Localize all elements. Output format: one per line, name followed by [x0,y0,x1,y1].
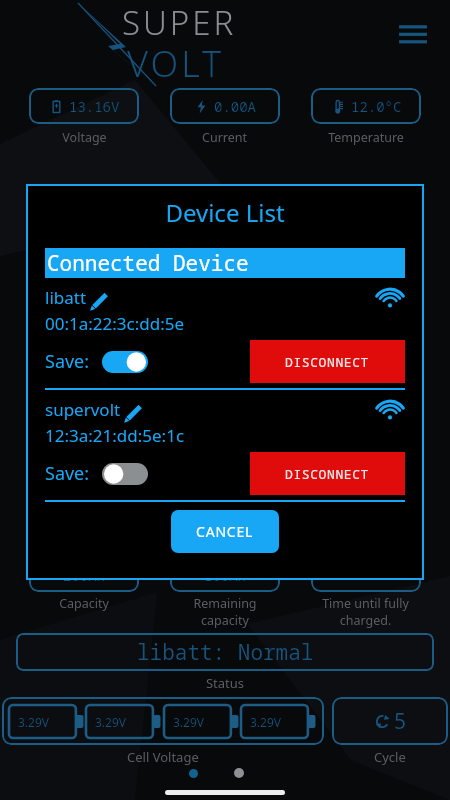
staticText: SUPER [122,0,237,45]
button[interactable]: 200Ah [29,558,139,592]
staticText: Cycle [374,748,406,766]
button[interactable]: libatt: Normal [16,633,434,671]
other: Rename [121,402,143,424]
button[interactable]: DISCONNECT [250,340,405,383]
staticText: Current [202,129,247,146]
staticText: CANCEL [196,522,254,541]
staticText: VOLT [127,39,225,82]
staticText: 3.29V [173,714,205,730]
staticText: Time until fully charged. [295,595,436,629]
staticText: Connected Device [47,249,249,278]
staticText: DISCONNECT [285,465,370,483]
button[interactable]: Save: [45,461,148,486]
staticText: 100Ah [204,566,246,585]
button[interactable]: 3.29V [2,697,324,745]
button[interactable]: Save: [45,349,148,374]
staticText: 3.29V [250,714,282,730]
button[interactable] [311,558,421,592]
button[interactable]: CANCEL [171,510,279,553]
staticText: Cell Voltage [127,748,199,766]
staticText: Status [0,674,450,692]
button[interactable]: supervolt [45,398,143,421]
staticText: 3.29V [95,714,127,730]
button[interactable]: 5 [332,697,448,745]
staticText: 12:3a:21:dd:5e:1c [45,424,185,447]
staticText: 3.29V [18,714,50,730]
other: Rename [87,290,109,312]
staticText: DISCONNECT [285,353,370,371]
button[interactable]: Signal strength [375,282,405,312]
button[interactable]: Signal strength [375,394,405,424]
staticText: 13.16V [69,97,120,116]
staticText: Remaining capacity [193,595,257,629]
staticText: Save: [45,461,90,486]
staticText: Temperature [328,129,404,146]
button[interactable]: 13.16V [29,88,139,124]
button[interactable]: 12.0°C [311,88,421,124]
staticText: 200Ah [63,566,105,585]
staticText: Capacity [59,595,109,612]
staticText: Save: [45,349,90,374]
button[interactable]: Menu [396,18,430,52]
button[interactable]: libatt [45,286,109,309]
staticText: libatt: Normal [137,638,314,667]
staticText: Device List [26,196,424,229]
staticText: 0.00A [214,97,256,116]
staticText: 00:1a:22:3c:dd:5e [45,312,185,335]
staticText: 5 [394,707,407,736]
button[interactable]: DISCONNECT [250,452,405,495]
staticText: Voltage [62,129,107,146]
staticText: 12.0°C [351,97,402,116]
staticText: libatt [45,286,87,309]
button[interactable]: 100Ah [170,558,280,592]
staticText: supervolt [45,398,121,421]
button[interactable]: 0.00A [170,88,280,124]
